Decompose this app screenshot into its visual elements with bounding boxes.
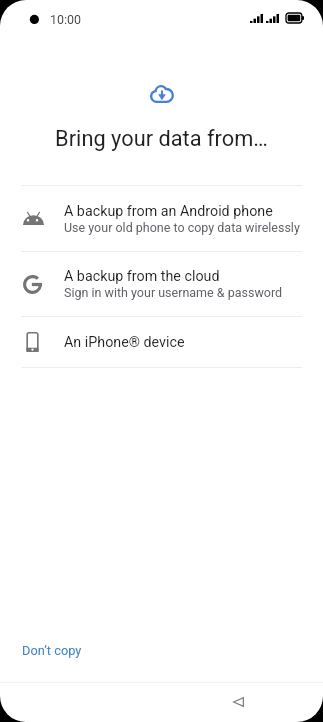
button[interactable]: An iPhone® device (0, 317, 323, 367)
staticText: A backup from the cloud (64, 268, 220, 285)
button[interactable]: Back (225, 689, 252, 715)
button[interactable]: Don’t copy (14, 637, 90, 664)
button[interactable]: A backup from the cloud (0, 252, 323, 316)
button[interactable]: A backup from an Android phone (0, 186, 323, 251)
staticText: 10:00 (50, 12, 82, 27)
staticText: Bring your data from… (0, 126, 323, 152)
staticText: Don’t copy (22, 643, 82, 658)
staticText: Use your old phone to copy data wireless… (64, 220, 300, 235)
staticText: A backup from an Android phone (64, 203, 273, 220)
staticText: An iPhone® device (64, 334, 185, 351)
staticText: Sign in with your username & password (64, 285, 283, 300)
